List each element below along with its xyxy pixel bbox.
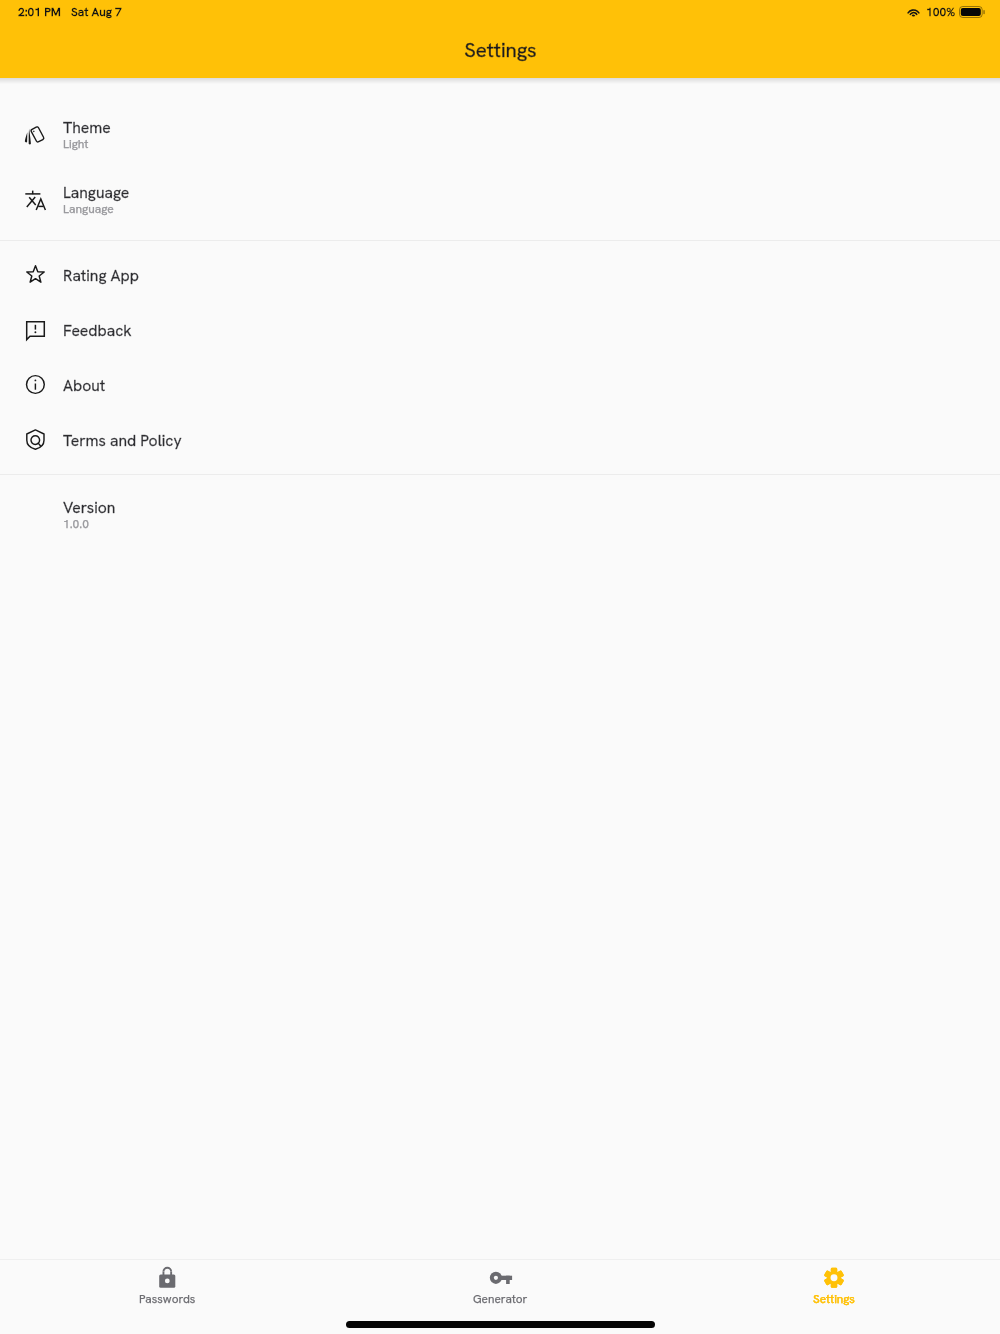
staticText: Terms and Policy — [63, 430, 182, 450]
button[interactable]: About — [0, 357, 1000, 412]
staticText: Theme — [63, 117, 111, 137]
staticText: Rating App — [63, 265, 139, 285]
staticText: Language — [63, 182, 130, 202]
staticText: Settings — [464, 36, 537, 63]
staticText: Feedback — [63, 320, 132, 340]
button[interactable]: Generator — [334, 1260, 667, 1321]
staticText: Version — [63, 497, 116, 517]
button[interactable]: Settings — [667, 1260, 1000, 1321]
staticText: Language — [63, 182, 130, 202]
staticText: Language — [63, 201, 114, 217]
staticText: About — [63, 375, 106, 395]
staticText: Feedback — [63, 320, 132, 340]
staticText: 1.0.0 — [63, 516, 89, 532]
staticText: Rating App — [63, 265, 139, 285]
staticText: Sat Aug 7 — [71, 4, 122, 20]
button[interactable]: Rating App — [0, 247, 1000, 302]
staticText: Settings — [813, 1291, 855, 1306]
staticText: 1.0.0 — [63, 516, 89, 532]
staticText: Version — [63, 497, 116, 517]
staticText: Terms and Policy — [63, 430, 182, 450]
staticText: Language — [63, 201, 114, 217]
staticText: Theme — [63, 117, 111, 137]
button[interactable]: Language — [0, 167, 1000, 232]
staticText: Passwords — [139, 1291, 196, 1306]
staticText: Generator — [473, 1291, 528, 1306]
staticText: Settings — [464, 36, 537, 63]
staticText: 2:01 PM — [18, 4, 61, 20]
button[interactable]: Version — [0, 482, 1000, 547]
staticText: Light — [63, 136, 89, 152]
button[interactable]: Passwords — [0, 1260, 334, 1321]
staticText: Generator — [473, 1291, 528, 1306]
staticText: Light — [63, 136, 89, 152]
staticText: About — [63, 375, 106, 395]
button[interactable]: Feedback — [0, 302, 1000, 357]
button[interactable]: Theme — [0, 102, 1000, 167]
button[interactable]: Terms and Policy — [0, 412, 1000, 467]
staticText: 100% — [926, 4, 956, 20]
staticText: Settings — [813, 1291, 855, 1306]
staticText: Passwords — [139, 1291, 196, 1306]
